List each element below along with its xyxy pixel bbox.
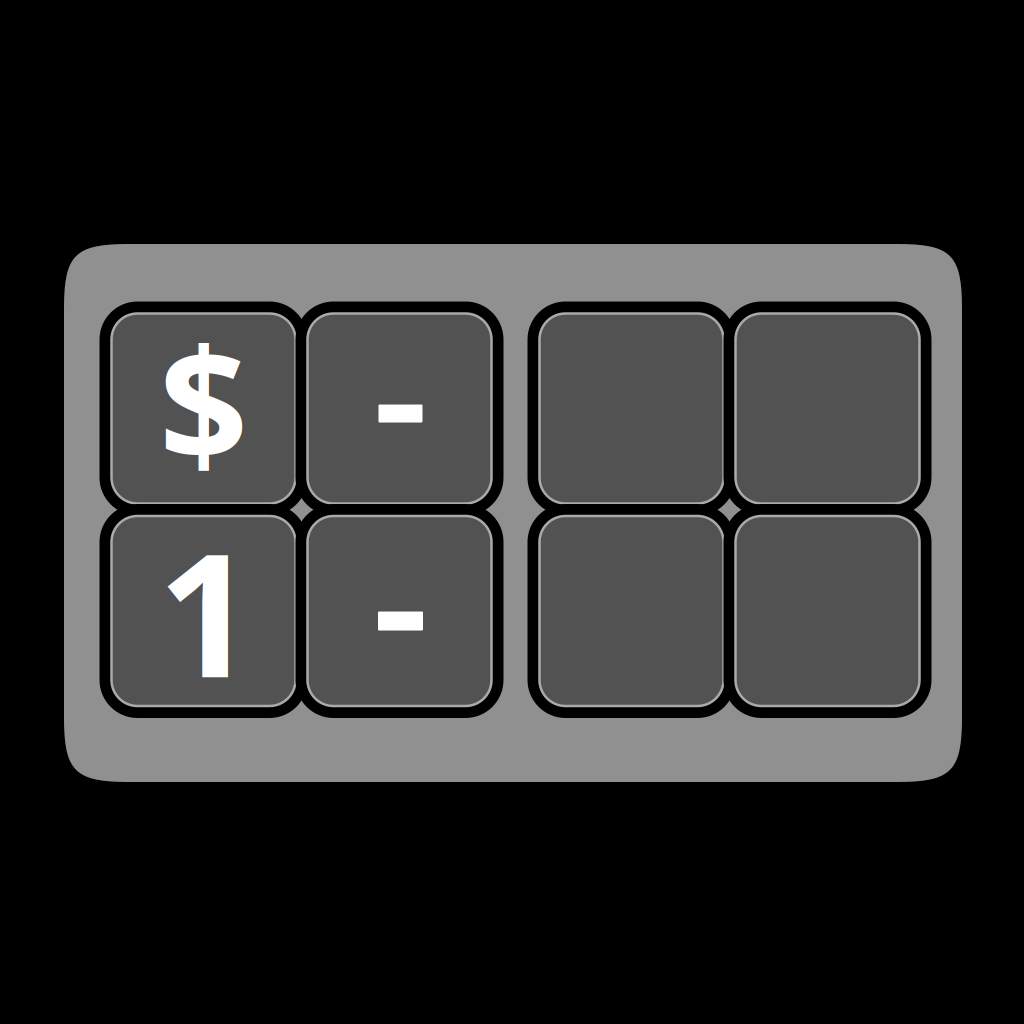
- staticText: $: [159, 298, 248, 505]
- button[interactable]: Blank key: [723, 301, 931, 515]
- button[interactable]: One: [99, 504, 307, 718]
- button[interactable]: Minus: [295, 301, 503, 515]
- staticText: 1: [157, 498, 255, 724]
- button[interactable]: Dollar: [99, 301, 307, 515]
- button[interactable]: Minus: [295, 504, 503, 718]
- button[interactable]: Blank key: [527, 504, 735, 718]
- button[interactable]: Blank key: [527, 301, 735, 515]
- button[interactable]: Blank key: [723, 504, 931, 718]
